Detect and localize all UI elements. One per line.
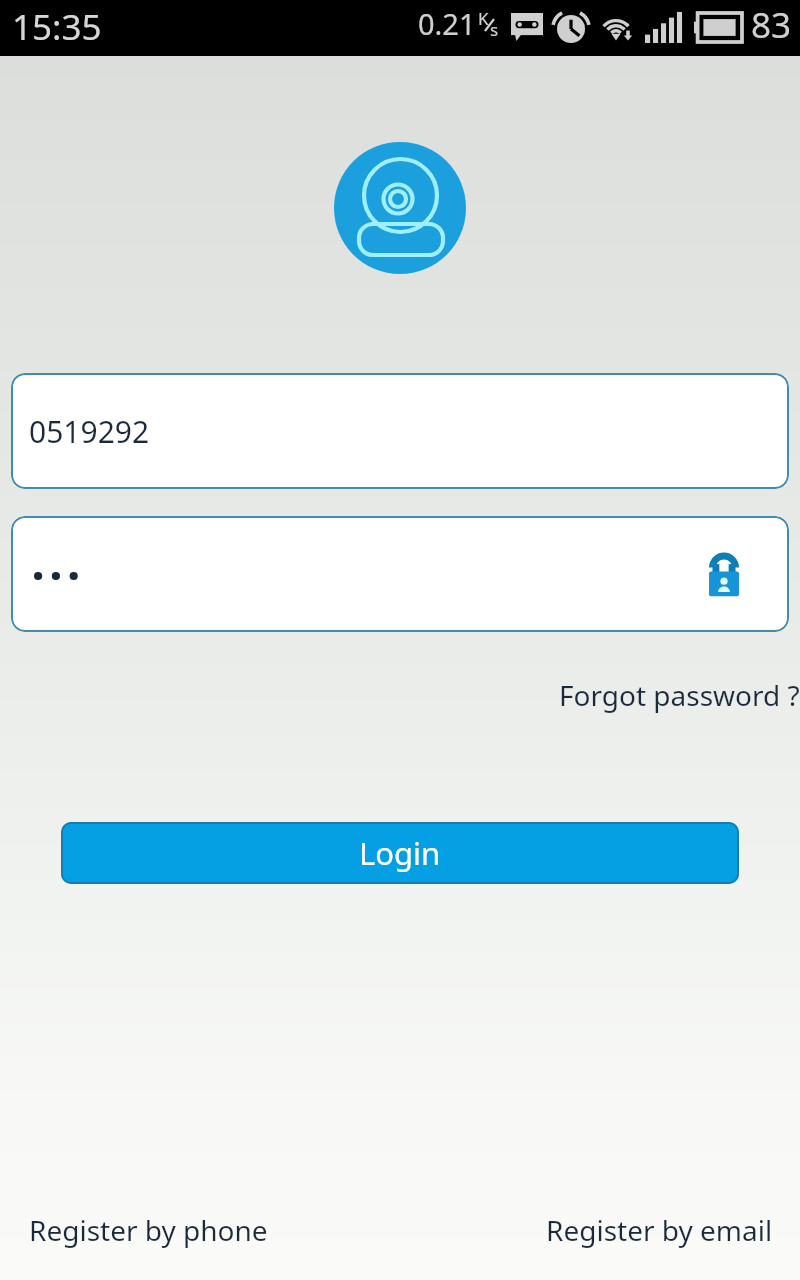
- staticText: Login: [359, 832, 441, 874]
- staticText: 0.21: [418, 4, 476, 43]
- button[interactable]: Register by phone: [0, 1190, 288, 1270]
- staticText: 15:35: [12, 3, 102, 51]
- other: Show password: [709, 556, 739, 597]
- staticText: K: [478, 7, 489, 30]
- staticText: 83: [751, 1, 792, 49]
- staticText: s: [490, 18, 499, 41]
- button[interactable]: Show password: [11, 516, 789, 632]
- staticText: Forgot password ?: [559, 676, 800, 714]
- button[interactable]: Register by email: [526, 1190, 800, 1270]
- staticText: Register by email: [546, 1211, 773, 1249]
- staticText: 0519292: [29, 411, 150, 452]
- button[interactable]: Forgot password ?: [545, 666, 800, 724]
- staticText: Register by phone: [29, 1211, 268, 1249]
- button[interactable]: 0519292: [11, 373, 789, 489]
- button[interactable]: Login: [61, 822, 739, 884]
